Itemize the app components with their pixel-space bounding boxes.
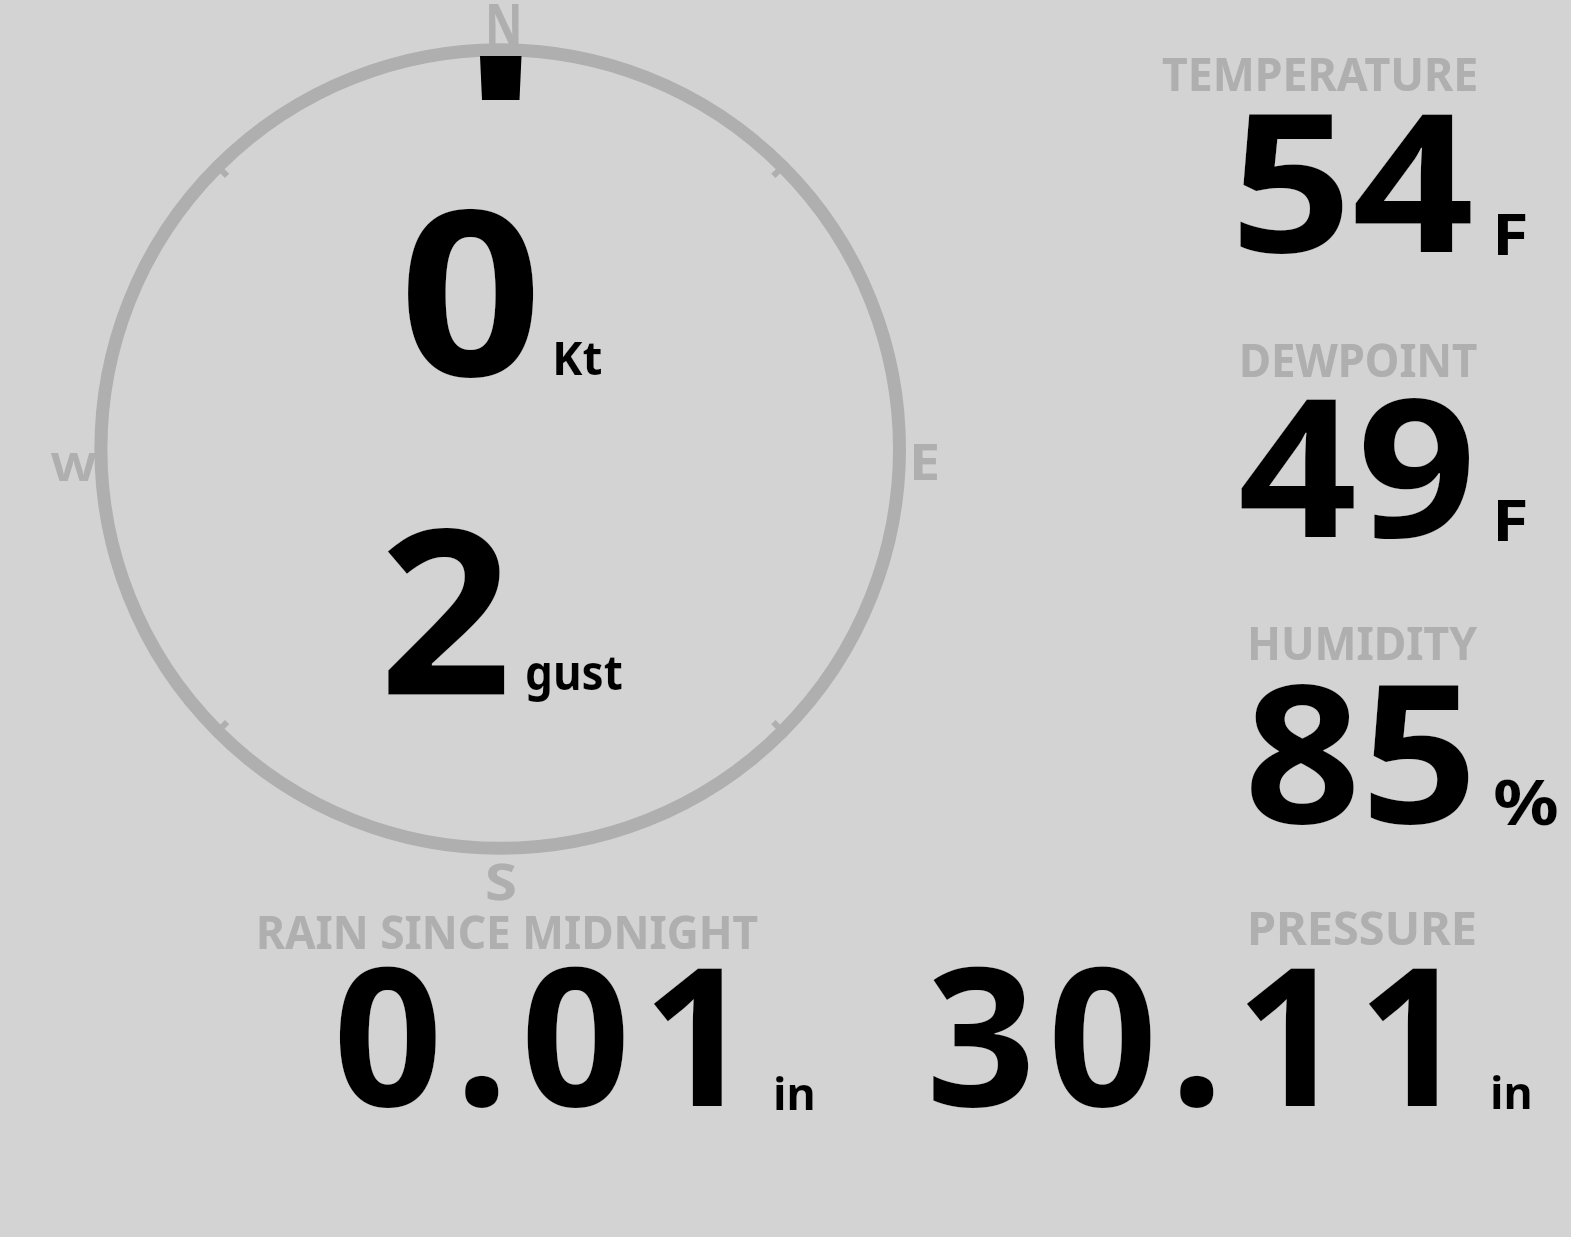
button[interactable]: Humidity 85 percent — [1140, 598, 1571, 848]
staticText: RAIN SINCE MIDNIGHT — [256, 900, 759, 963]
button[interactable]: Dew point 49 degrees Fahrenheit — [1140, 315, 1571, 565]
staticText: 85 — [1244, 618, 1478, 868]
staticText: 2 — [379, 449, 512, 762]
staticText: N — [485, 0, 523, 62]
staticText: DEWPOINT — [1239, 328, 1477, 391]
staticText: Kt — [552, 326, 603, 389]
staticText: % — [1493, 758, 1559, 844]
button[interactable]: Wind 0 knots, gusting 2, from the north — [0, 0, 960, 900]
staticText: S — [485, 847, 517, 915]
staticText: gust — [525, 639, 623, 704]
staticText: 30.11 — [926, 901, 1480, 1151]
staticText: E — [909, 425, 941, 494]
staticText: PRESSURE — [1247, 896, 1477, 959]
staticText: TEMPERATURE — [1162, 42, 1479, 105]
staticText: 49 — [1238, 332, 1477, 582]
staticText: F — [1492, 479, 1529, 558]
button[interactable]: Pressure 30.11 inches — [900, 885, 1571, 1135]
button[interactable]: Temperature 54 degrees Fahrenheit — [1140, 30, 1571, 280]
staticText: F — [1492, 193, 1529, 272]
button[interactable]: Rain since midnight 0.01 inches — [230, 885, 850, 1135]
staticText: 0 — [399, 130, 543, 443]
staticText: in — [1490, 1061, 1533, 1122]
staticText: W — [51, 439, 97, 492]
staticText: HUMIDITY — [1247, 611, 1478, 674]
staticText: 0.01 — [333, 901, 765, 1151]
staticText: in — [773, 1062, 816, 1123]
staticText: 54 — [1230, 47, 1475, 297]
